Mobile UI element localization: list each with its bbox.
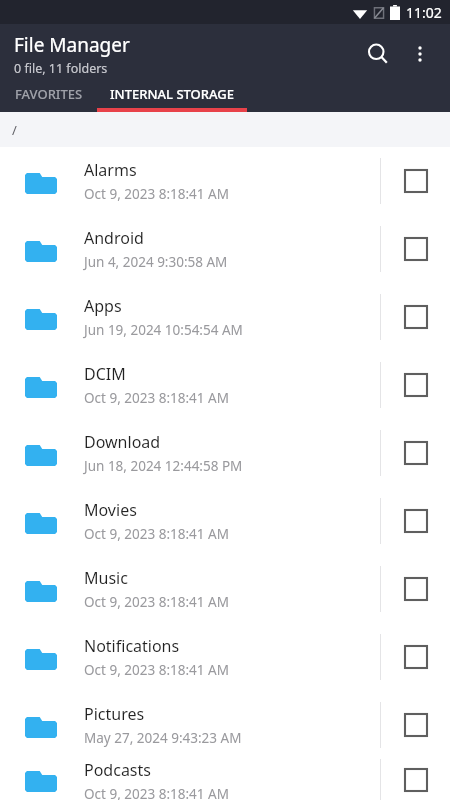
button[interactable]: FAVORITES [0, 84, 97, 112]
staticText: File Manager [14, 32, 130, 58]
staticText: May 27, 2024 9:43:23 AM [84, 729, 242, 747]
staticText: 11:02 [406, 3, 442, 22]
button[interactable]: DCIM [0, 351, 450, 419]
staticText: Oct 9, 2023 8:18:41 AM [84, 593, 229, 611]
staticText: Alarms [84, 159, 137, 181]
button[interactable]: Podcasts [0, 759, 450, 800]
staticText: Oct 9, 2023 8:18:41 AM [84, 661, 229, 679]
button[interactable]: Select Movies [381, 487, 450, 555]
button[interactable]: Select Download [381, 419, 450, 487]
button[interactable]: Select Alarms [381, 147, 450, 215]
button[interactable]: Search [356, 32, 400, 76]
button[interactable]: / [12, 121, 17, 139]
staticText: Movies [84, 499, 137, 521]
staticText: INTERNAL STORAGE [110, 85, 234, 103]
button[interactable]: Select Podcasts [381, 759, 450, 800]
staticText: Oct 9, 2023 8:18:41 AM [84, 525, 229, 543]
staticText: FAVORITES [15, 85, 83, 103]
button[interactable]: Select Notifications [381, 623, 450, 691]
staticText: Apps [84, 295, 122, 317]
staticText: DCIM [84, 363, 126, 385]
staticText: Oct 9, 2023 8:18:41 AM [84, 785, 229, 800]
staticText: Jun 4, 2024 9:30:58 AM [84, 253, 228, 271]
staticText: Jun 19, 2024 10:54:54 AM [84, 321, 243, 339]
staticText: Jun 18, 2024 12:44:58 PM [84, 457, 243, 475]
button[interactable]: Pictures [0, 691, 450, 759]
button[interactable]: INTERNAL STORAGE [97, 84, 247, 112]
button[interactable]: Music [0, 555, 450, 623]
button[interactable]: Alarms [0, 147, 450, 215]
button[interactable]: Download [0, 419, 450, 487]
staticText: Oct 9, 2023 8:18:41 AM [84, 185, 229, 203]
button[interactable]: Notifications [0, 623, 450, 691]
button[interactable]: Select Android [381, 215, 450, 283]
staticText: Music [84, 567, 128, 589]
button[interactable]: Select DCIM [381, 351, 450, 419]
staticText: Download [84, 431, 161, 453]
button[interactable]: Select Apps [381, 283, 450, 351]
staticText: Notifications [84, 635, 180, 657]
button[interactable]: More options [400, 34, 440, 74]
button[interactable]: Movies [0, 487, 450, 555]
staticText: Pictures [84, 703, 145, 725]
button[interactable]: Android [0, 215, 450, 283]
staticText: Podcasts [84, 759, 151, 781]
button[interactable]: Select Music [381, 555, 450, 623]
staticText: / [12, 121, 17, 139]
staticText: Oct 9, 2023 8:18:41 AM [84, 389, 229, 407]
staticText: Android [84, 227, 144, 249]
button[interactable]: Apps [0, 283, 450, 351]
staticText: 0 file, 11 folders [14, 60, 108, 77]
button[interactable]: Select Pictures [381, 691, 450, 759]
